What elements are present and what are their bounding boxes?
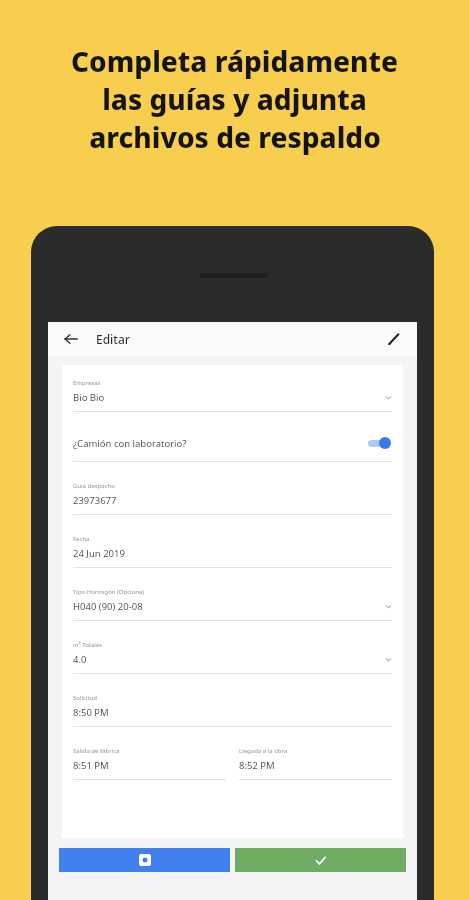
staticText: 8:52 PM [239, 759, 275, 772]
staticText: 23973677 [73, 494, 117, 507]
button[interactable]: Solicitud [73, 694, 392, 747]
staticText: ¿Camión con laboratorio? [73, 437, 187, 450]
staticText: las guías y adjunta [102, 80, 367, 118]
button[interactable]: m³ Totales [73, 641, 392, 694]
button[interactable]: Empresas [73, 379, 392, 432]
button[interactable]: ¿Camión con laboratorio? [73, 432, 392, 482]
button[interactable]: Tipo Hormigón (Opciona) [73, 588, 392, 641]
button[interactable]: Edit [383, 328, 405, 350]
staticText: H040 (90) 20-08 [73, 600, 143, 613]
staticText: Bio Bio [73, 391, 105, 404]
staticText: Editar [96, 331, 130, 347]
staticText: Fecha [73, 535, 90, 543]
button[interactable]: Llegada a la obra [239, 747, 392, 792]
staticText: 8:50 PM [73, 706, 109, 719]
staticText: Guía despacho [73, 482, 115, 490]
button[interactable]: Confirm [235, 848, 406, 872]
button[interactable]: Fecha [73, 535, 392, 588]
staticText: 8:51 PM [73, 759, 109, 772]
staticText: Empresas [73, 379, 101, 387]
staticText: Tipo Hormigón (Opciona) [73, 588, 145, 596]
button[interactable]: Take photo [59, 848, 230, 872]
staticText: archivos de respaldo [89, 118, 381, 156]
button[interactable]: Back [60, 328, 82, 350]
staticText: Solicitud [73, 694, 98, 702]
staticText: m³ Totales [73, 641, 103, 649]
staticText: Llegada a la obra [239, 747, 288, 755]
staticText: 4.0 [73, 653, 87, 666]
staticText: Completa rápidamente [71, 42, 398, 80]
button[interactable]: Salida de fábrica [73, 747, 226, 792]
button[interactable]: Guía despacho [73, 482, 392, 535]
staticText: 24 Jun 2019 [73, 547, 125, 560]
staticText: Salida de fábrica [73, 747, 120, 755]
